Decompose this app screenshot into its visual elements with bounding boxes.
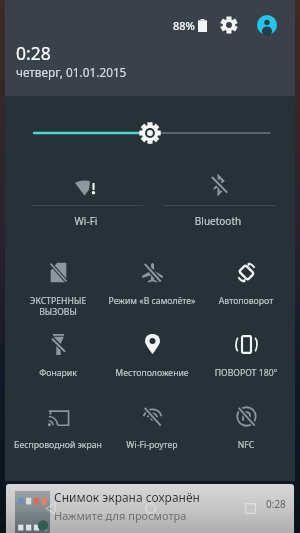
button[interactable]: Settings	[217, 13, 241, 37]
staticText: 88%	[173, 18, 195, 33]
staticText: ПОВОРОТ 180°	[199, 367, 293, 379]
staticText: Автоповорот	[199, 295, 293, 307]
staticText: Фонарик	[11, 367, 105, 379]
staticText: Нажмите для просмотра	[54, 508, 187, 523]
button[interactable]: Автоповорот	[199, 242, 293, 314]
staticText: Bluetooth	[152, 214, 284, 228]
button[interactable]: Снимок экрана сохранён	[6, 484, 294, 533]
staticText: Wi-Fi-роутер	[105, 439, 199, 451]
staticText: четверг, 01.01.2015	[16, 64, 127, 80]
staticText: NFC	[199, 439, 293, 451]
button[interactable]: Switch user	[255, 13, 279, 37]
staticText: Wi-Fi	[20, 214, 152, 228]
button[interactable]: ЭКСТРЕННЫЕ ВЫЗОВЫ	[11, 242, 105, 314]
button[interactable]: Беспроводной экран	[11, 386, 105, 458]
staticText: 0:28	[266, 497, 286, 511]
button[interactable]: Recents	[200, 484, 300, 533]
staticText: Снимок экрана сохранён	[54, 489, 200, 505]
button[interactable]: Home	[100, 484, 200, 533]
staticText: 0:28	[16, 41, 51, 65]
button[interactable]: Wi-Fi-роутер	[105, 386, 199, 458]
button[interactable]: Режим «В самолёте»	[105, 242, 199, 314]
button[interactable]: Bluetooth	[152, 170, 284, 242]
button[interactable]: Wi-Fi	[20, 170, 152, 242]
button[interactable]: ПОВОРОТ 180°	[199, 314, 293, 386]
staticText: ЭКСТРЕННЫЕ ВЫЗОВЫ	[11, 295, 105, 318]
button[interactable]: Местоположение	[105, 314, 199, 386]
staticText: Местоположение	[105, 367, 199, 379]
button[interactable]: Фонарик	[11, 314, 105, 386]
staticText: Режим «В самолёте»	[105, 295, 199, 307]
button[interactable]: Back	[0, 484, 100, 533]
button[interactable]: Brightness	[5, 96, 295, 170]
button[interactable]: NFC	[199, 386, 293, 458]
staticText: Беспроводной экран	[11, 439, 105, 451]
